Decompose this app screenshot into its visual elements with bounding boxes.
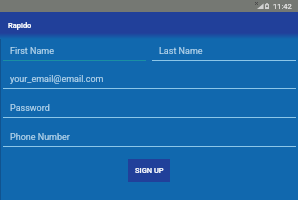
- button[interactable]: your_email@email.com: [0, 68, 298, 89]
- other: Battery: [265, 3, 269, 9]
- staticText: 11:42: [273, 2, 292, 11]
- button[interactable]: Phone Number: [0, 126, 298, 147]
- staticText: Rapido: [8, 21, 32, 30]
- staticText: Phone Number: [10, 132, 70, 143]
- staticText: Last Name: [159, 46, 203, 57]
- staticText: First Name: [10, 46, 55, 57]
- staticText: SIGN UP: [135, 166, 164, 175]
- button[interactable]: Password: [0, 97, 298, 118]
- button[interactable]: SIGN UP: [128, 159, 170, 182]
- staticText: Password: [10, 103, 50, 114]
- button[interactable]: First Name: [0, 40, 149, 61]
- button[interactable]: Last Name: [149, 40, 298, 61]
- other: Mobile signal: [255, 2, 264, 10]
- staticText: your_email@email.com: [10, 74, 104, 85]
